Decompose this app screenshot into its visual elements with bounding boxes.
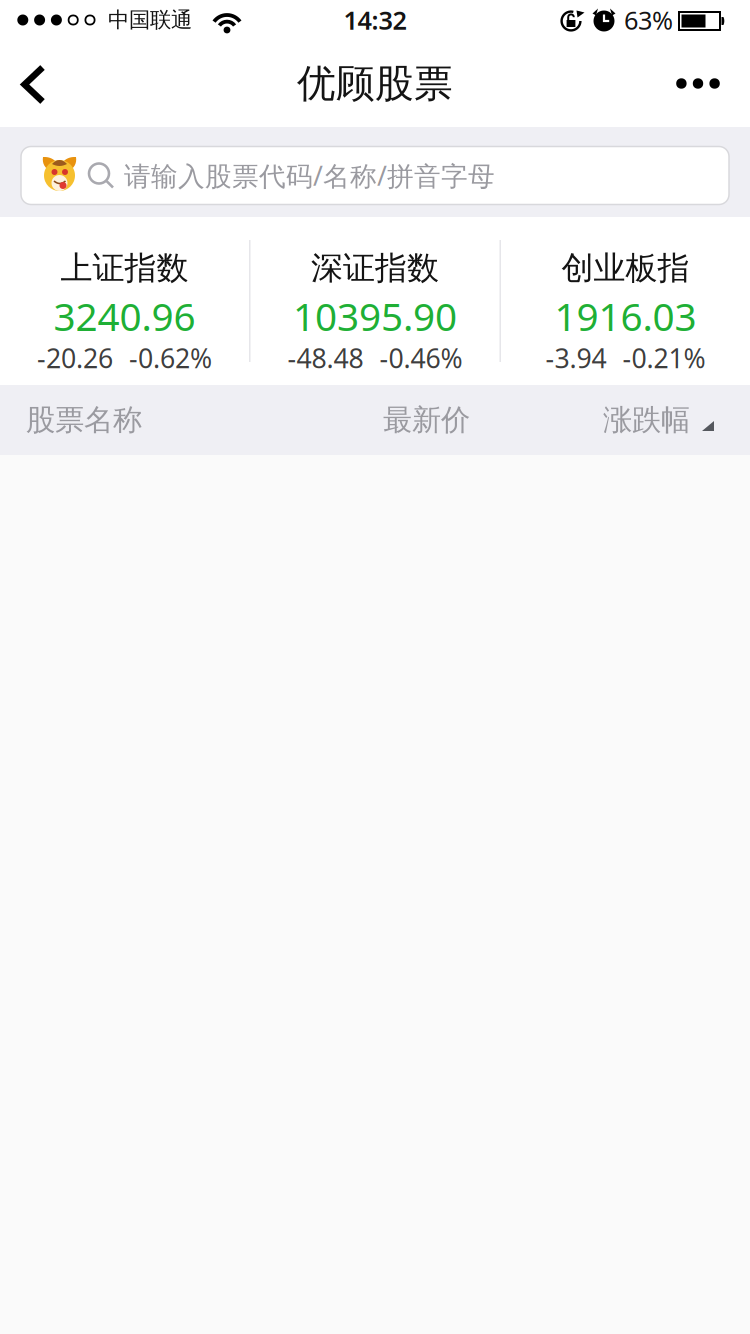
staticText: 上证指数: [60, 248, 188, 288]
staticText: 3240.96: [53, 290, 195, 342]
staticText: 股票名称: [26, 402, 142, 438]
button[interactable]: 更多: [666, 61, 730, 105]
staticText: 优顾股票: [297, 60, 453, 107]
button[interactable]: 深证指数: [250, 217, 499, 385]
staticText: 1916.03: [554, 290, 696, 342]
staticText: 10395.90: [293, 290, 457, 342]
staticText: 请输入股票代码/名称/拼音字母: [124, 158, 495, 193]
staticText: 最新价: [383, 402, 470, 438]
button[interactable]: 创业板指: [501, 217, 750, 385]
button[interactable]: 搜索股票: [0, 139, 750, 204]
button[interactable]: 返回: [18, 60, 64, 107]
staticText: -3.94: [545, 340, 606, 376]
staticText: 63%: [624, 3, 673, 37]
staticText: -0.21%: [622, 340, 705, 376]
staticText: 涨跌幅: [603, 402, 690, 438]
button[interactable]: 按涨跌幅排序: [603, 402, 750, 438]
staticText: 深证指数: [311, 248, 439, 288]
staticText: -0.62%: [129, 340, 212, 376]
staticText: 中国联通: [108, 7, 192, 33]
staticText: 创业板指: [561, 248, 689, 288]
staticText: -20.26: [37, 340, 113, 376]
staticText: -48.48: [287, 340, 363, 376]
staticText: 14:32: [343, 3, 406, 37]
button[interactable]: 上证指数: [0, 217, 249, 385]
button[interactable]: 按最新价排序: [383, 402, 470, 438]
staticText: -0.46%: [379, 340, 462, 376]
